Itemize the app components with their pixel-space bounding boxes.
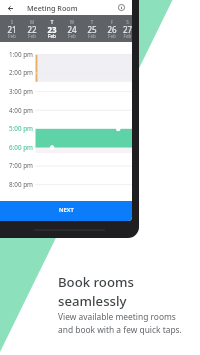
button[interactable]: NEXT [0, 201, 132, 221]
staticText: Feb [42, 33, 62, 39]
staticText: S [2, 19, 22, 25]
button[interactable]: S [122, 15, 132, 42]
staticText: 6:00 pm [9, 143, 33, 152]
button[interactable]: Back [5, 3, 15, 13]
staticText: T [42, 19, 62, 25]
button[interactable]: M [22, 15, 42, 42]
staticText: M [22, 19, 42, 25]
staticText: Feb [82, 33, 102, 39]
staticText: 25 [82, 24, 102, 35]
staticText: 22 [22, 24, 42, 35]
button[interactable]: T [82, 15, 102, 42]
staticText: 4:00 pm [9, 106, 33, 115]
staticText: 8:00 pm [9, 180, 33, 189]
staticText: W [62, 19, 82, 25]
button[interactable]: W [62, 15, 82, 42]
staticText: Book rooms seamlessly [58, 273, 134, 309]
staticText: Feb [22, 33, 42, 39]
button[interactable]: T [42, 15, 62, 42]
staticText: Feb [62, 33, 82, 39]
button[interactable]: Info [116, 2, 127, 13]
staticText: F [102, 19, 122, 25]
staticText: 27 [122, 24, 132, 35]
staticText: T [82, 19, 102, 25]
staticText: 21 [2, 24, 22, 35]
staticText: Meeting Room [27, 3, 78, 13]
staticText: Feb [102, 33, 122, 39]
staticText: 2:00 pm [9, 68, 33, 77]
staticText: NEXT [59, 206, 74, 214]
staticText: Feb [2, 33, 22, 39]
staticText: View available meeting rooms and book wi… [58, 311, 182, 335]
staticText: 24 [62, 24, 82, 35]
staticText: 5:00 pm [9, 124, 33, 133]
staticText: 23 [42, 24, 62, 35]
staticText: 26 [102, 24, 122, 35]
staticText: 7:00 pm [9, 161, 33, 170]
staticText: 1:00 pm [9, 50, 33, 59]
staticText: Feb [122, 33, 132, 39]
staticText: 3:00 pm [9, 87, 33, 96]
button[interactable]: F [102, 15, 122, 42]
staticText: S [122, 19, 132, 25]
button[interactable]: S [2, 15, 22, 42]
